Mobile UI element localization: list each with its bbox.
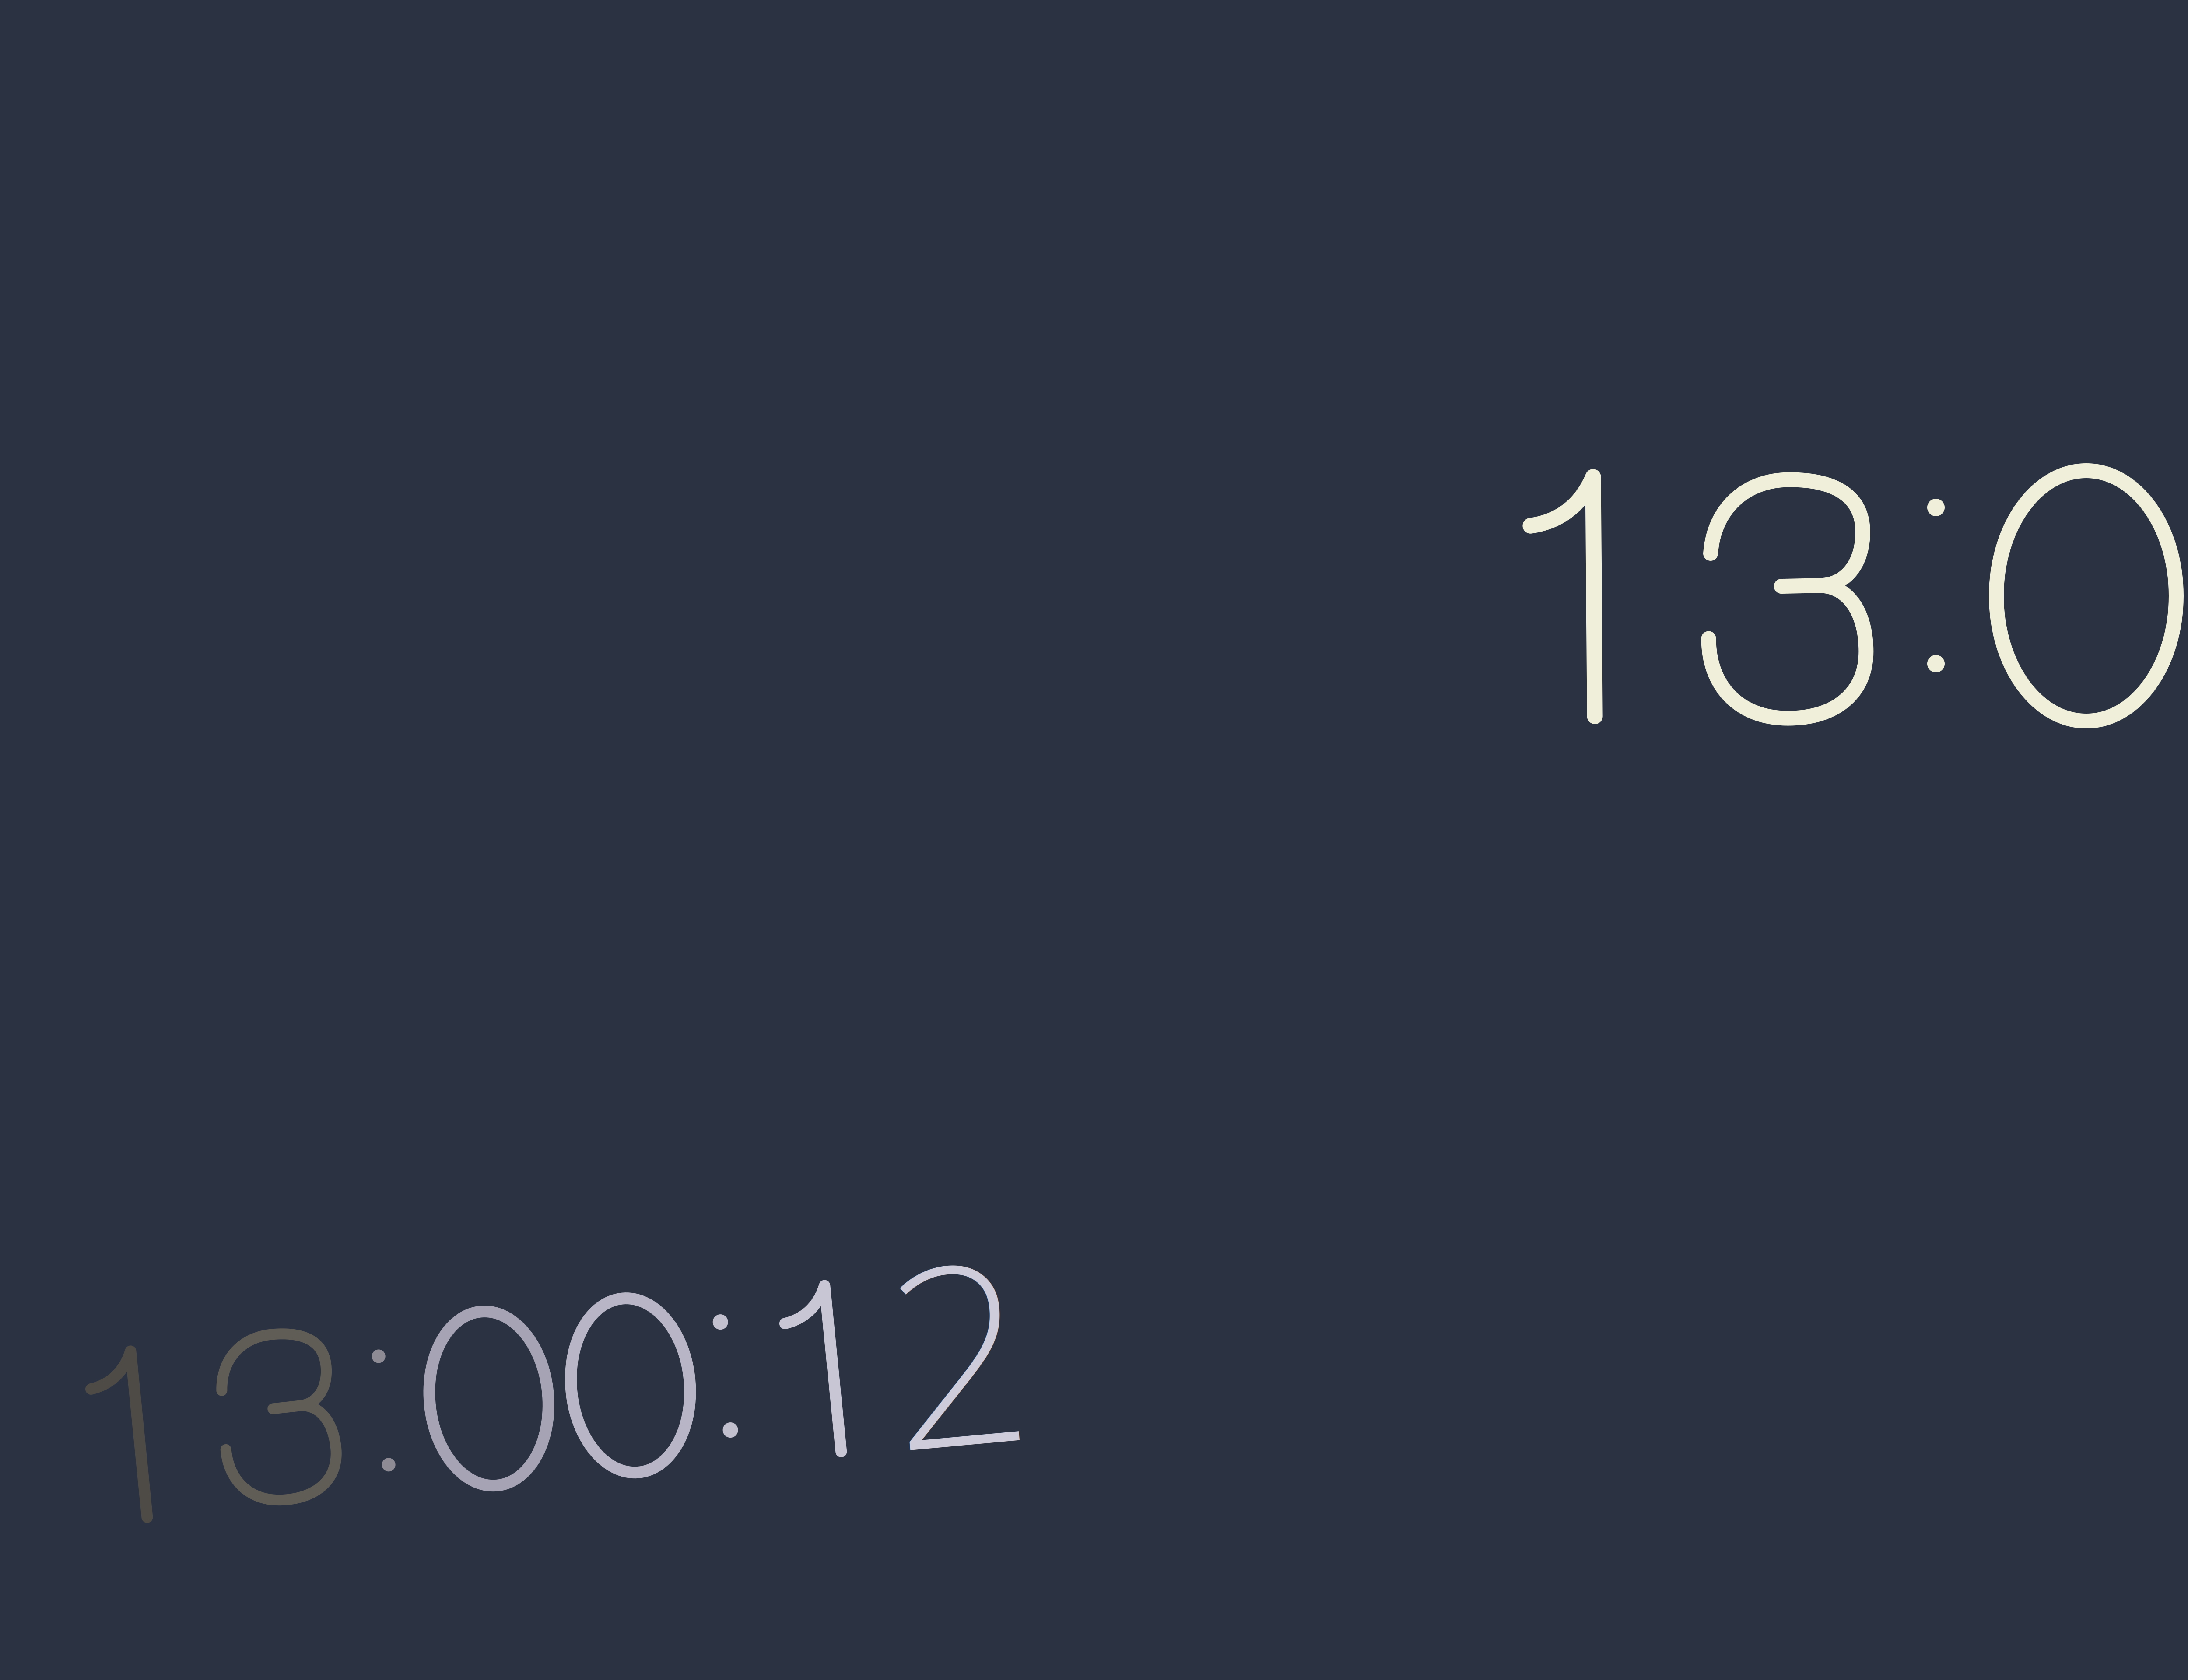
staticText: 2 <box>889 1220 1031 1551</box>
